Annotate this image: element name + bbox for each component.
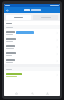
- button[interactable]: [6, 15, 31, 20]
- button[interactable]: [4, 57, 60, 64]
- button[interactable]: [4, 36, 60, 43]
- button[interactable]: Profile: [43, 90, 52, 96]
- button[interactable]: Search: [28, 90, 37, 96]
- button[interactable]: [4, 43, 60, 50]
- button[interactable]: [4, 29, 60, 36]
- button[interactable]: Home: [12, 90, 21, 96]
- button[interactable]: [4, 71, 60, 78]
- button[interactable]: Back: [5, 8, 10, 13]
- button[interactable]: [33, 15, 58, 20]
- button[interactable]: [4, 50, 60, 57]
